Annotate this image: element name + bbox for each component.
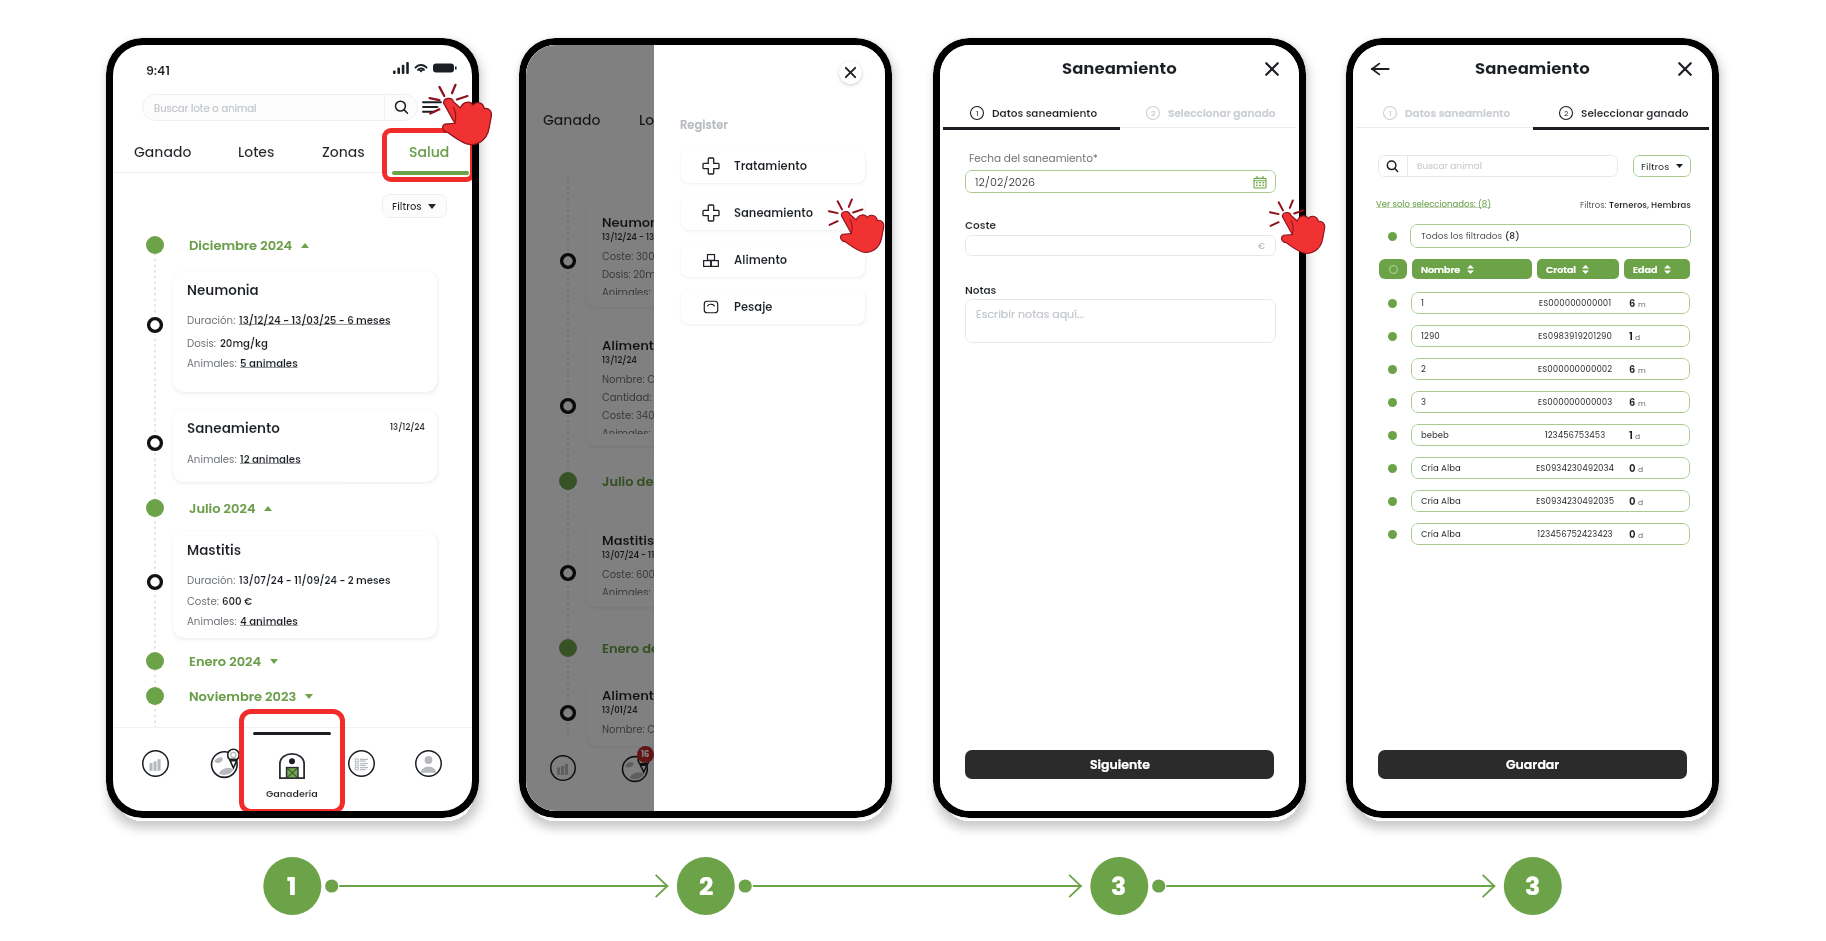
button[interactable]: Neumonia (173, 271, 437, 392)
staticText: 2 (1564, 108, 1569, 118)
staticText: 1 (976, 108, 979, 118)
button[interactable]: Buscar lote o animal (142, 94, 418, 121)
staticText: 20mg/kg (220, 336, 268, 350)
button[interactable]: Close (1674, 58, 1696, 80)
staticText: Filtros: (1580, 199, 1609, 211)
button[interactable]: Noviembre 2023 (189, 687, 313, 705)
button[interactable]: 1290 (1411, 325, 1690, 347)
button[interactable]: Escribir notas aquí... (965, 299, 1276, 343)
button[interactable]: Estadísticas (532, 728, 594, 811)
button[interactable]: Edad (1624, 259, 1690, 279)
staticText: Julio de 20 (602, 472, 673, 490)
button[interactable]: 1 (1411, 292, 1690, 314)
staticText: Animales: 5 (602, 285, 660, 295)
button[interactable]: Mastitis (173, 531, 437, 638)
staticText: Enero 2024 (189, 652, 262, 670)
staticText: d (1638, 530, 1644, 540)
staticText: Datos saneamiento (992, 106, 1098, 121)
staticText: Siguiente (1090, 756, 1150, 773)
button[interactable]: Pesaje (681, 290, 865, 324)
button[interactable]: Saneamiento (681, 196, 865, 230)
staticText: Crotal (1546, 263, 1576, 276)
button[interactable]: Back (1369, 58, 1390, 79)
button[interactable]: Filtros (1633, 155, 1691, 177)
button[interactable]: Cría Alba (1411, 490, 1690, 512)
staticText: Alimento (602, 686, 663, 704)
staticText: Lotes (238, 142, 275, 162)
button[interactable]: Zonas (298, 134, 388, 170)
button[interactable]: Tratamiento (681, 149, 865, 183)
button[interactable]: Perfil (397, 723, 459, 807)
staticText: 3 (1421, 396, 1521, 408)
button[interactable]: Cría Alba (1411, 523, 1690, 545)
staticText: Nombre (1421, 263, 1461, 276)
staticText: Animales: (187, 452, 237, 466)
staticText: Notas (965, 283, 997, 298)
button[interactable]: Lotes (211, 134, 301, 170)
staticText: € (1258, 240, 1265, 252)
button[interactable]: Diciembre 2024 (189, 236, 309, 254)
button[interactable]: Todos los filtrados (1410, 224, 1691, 248)
button[interactable]: Estadísticas (124, 723, 186, 807)
staticText: 6 (1629, 395, 1636, 409)
staticText: ES000000000001 (1521, 297, 1629, 309)
staticText: Enero de 2 (602, 639, 670, 657)
staticText: Terneros, Hembras (1609, 199, 1691, 211)
staticText: 1 (1421, 297, 1521, 309)
button[interactable]: bebeb (1411, 424, 1690, 446)
button[interactable]: 2 (1411, 358, 1690, 380)
staticText: 0 (1629, 527, 1636, 541)
button[interactable]: Tareas (330, 723, 392, 807)
button[interactable]: Saneamiento (173, 409, 437, 482)
staticText: ES000000000003 (1521, 396, 1629, 408)
button[interactable]: Enero 2024 (189, 652, 278, 670)
button[interactable]: Alimento (681, 243, 865, 277)
button[interactable]: 3 (1411, 391, 1690, 413)
staticText: 13/12/24 (390, 421, 425, 433)
button[interactable]: Guardar (1378, 750, 1687, 779)
staticText: 12/02/2026 (975, 174, 1036, 189)
button[interactable]: Mapa (603, 728, 665, 811)
button[interactable]: Nombre (1412, 259, 1532, 279)
staticText: m (1638, 365, 1646, 375)
button[interactable]: 2 (1559, 102, 1689, 124)
staticText: 16 (641, 749, 650, 760)
staticText: Pesaje (734, 299, 773, 315)
staticText: 12 animales (240, 452, 301, 466)
staticText: Coste: (187, 594, 219, 608)
button[interactable]: 1 (970, 102, 1098, 124)
button[interactable]: Salud (384, 134, 472, 170)
staticText: 1290 (1421, 330, 1521, 342)
staticText: Ganado (134, 142, 192, 162)
staticText: Animales: 5 (602, 585, 660, 595)
button[interactable]: Close (839, 61, 862, 84)
button[interactable]: Siguiente (965, 750, 1274, 779)
button[interactable]: 2 (1146, 102, 1276, 124)
button[interactable]: Select all (1379, 259, 1407, 279)
button[interactable]: Perfil (815, 728, 877, 811)
button[interactable]: Julio 2024 (189, 499, 272, 517)
staticText: Guardar (1506, 756, 1560, 773)
button[interactable]: Buscar animal (1378, 155, 1618, 177)
button[interactable]: Ganado (118, 134, 208, 170)
button[interactable]: € (965, 235, 1276, 256)
button[interactable]: Filtros (382, 194, 447, 218)
staticText: Register (680, 117, 728, 133)
button[interactable]: Ver solo seleccionados: (8) (1376, 198, 1492, 210)
staticText: 5 animales (240, 356, 298, 370)
button[interactable]: Close (1261, 58, 1283, 80)
button[interactable]: Mapa (193, 723, 255, 807)
button[interactable]: Cría Alba (1411, 457, 1690, 479)
button[interactable]: 12/02/2026 (965, 170, 1276, 193)
button[interactable]: Crotal (1537, 259, 1619, 279)
button[interactable]: Ganadería (261, 723, 323, 807)
staticText: Dosis: 20m (602, 267, 656, 281)
staticText: 1 (287, 869, 297, 904)
staticText: Neumonia (187, 281, 259, 300)
button[interactable]: 1 (1383, 102, 1511, 124)
staticText: 1 (1629, 428, 1633, 442)
staticText: Ganado (543, 110, 601, 130)
button[interactable]: Menu (423, 99, 445, 115)
